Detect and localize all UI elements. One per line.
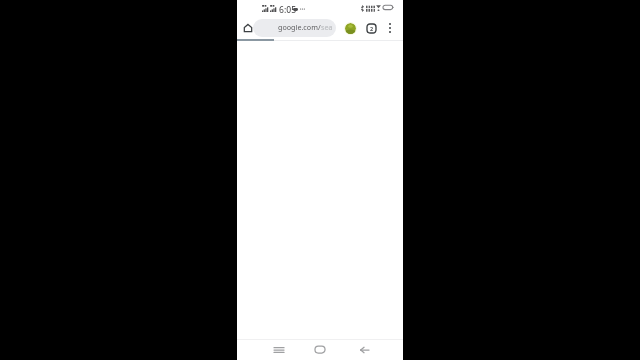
button[interactable]: Recent apps <box>268 339 290 360</box>
button[interactable]: More options <box>381 19 399 37</box>
button[interactable]: Home page <box>239 19 256 36</box>
button[interactable]: Home <box>309 339 331 360</box>
staticText: 6:05 <box>279 4 297 16</box>
button[interactable]: Back <box>353 339 375 360</box>
button[interactable]: Account <box>341 19 359 37</box>
staticText: 2 <box>370 25 374 32</box>
staticText: sea <box>321 22 333 32</box>
button[interactable]: Search or type URL <box>253 19 336 37</box>
staticText: google.com/ <box>278 22 321 32</box>
button[interactable]: Switch tabs <box>362 19 380 37</box>
